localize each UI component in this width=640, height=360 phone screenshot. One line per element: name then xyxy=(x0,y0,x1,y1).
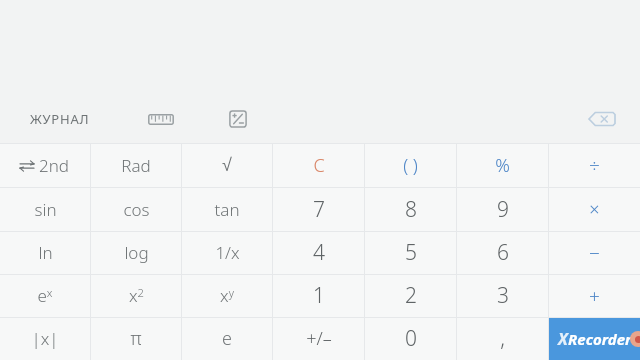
button[interactable]: ln xyxy=(0,231,90,274)
button[interactable]: Unit ruler xyxy=(138,104,184,134)
button[interactable]: 5 xyxy=(365,231,456,274)
staticText: 7 xyxy=(313,195,325,224)
button[interactable]: = xyxy=(549,317,640,360)
staticText: X xyxy=(558,328,568,350)
staticText: 8 xyxy=(405,195,417,224)
button[interactable]: |x| xyxy=(0,317,90,360)
button[interactable]: ÷ xyxy=(549,143,640,187)
button[interactable]: sin xyxy=(0,187,90,231)
button[interactable]: 4 xyxy=(273,231,364,274)
staticText: |x| xyxy=(31,327,59,350)
button[interactable]: ex xyxy=(0,274,90,317)
staticText: 0 xyxy=(405,324,417,353)
staticText: e xyxy=(222,326,232,351)
button[interactable]: log xyxy=(91,231,181,274)
staticText: + xyxy=(589,283,600,309)
button[interactable]: , xyxy=(457,317,548,360)
button[interactable]: 7 xyxy=(273,187,364,231)
staticText: sin xyxy=(34,198,57,221)
staticText: √ xyxy=(222,155,232,175)
button[interactable]: 3 xyxy=(457,274,548,317)
staticText: cos xyxy=(123,198,150,221)
staticText: 2nd xyxy=(39,154,70,177)
button[interactable]: + xyxy=(549,274,640,317)
button[interactable]: − xyxy=(549,231,640,274)
staticText: = xyxy=(589,325,601,352)
button[interactable]: Unit converter xyxy=(218,102,258,136)
staticText: % xyxy=(495,153,510,178)
button[interactable]: 1 xyxy=(273,274,364,317)
button[interactable]: e xyxy=(182,317,272,360)
staticText: Rad xyxy=(121,154,151,177)
button[interactable]: x2 xyxy=(91,274,181,317)
staticText: 9 xyxy=(497,195,509,224)
button[interactable]: × xyxy=(549,187,640,231)
button[interactable]: Rad xyxy=(91,143,181,187)
staticText: +/– xyxy=(306,326,332,351)
staticText: ÷ xyxy=(589,152,600,178)
button[interactable]: +/– xyxy=(273,317,364,360)
button[interactable]: √ xyxy=(182,143,272,187)
button[interactable]: ( ) xyxy=(365,143,456,187)
button[interactable]: 6 xyxy=(457,231,548,274)
button[interactable]: π xyxy=(91,317,181,360)
button[interactable]: 2 xyxy=(365,274,456,317)
button[interactable]: Backspace xyxy=(576,103,628,135)
button[interactable]: 9 xyxy=(457,187,548,231)
staticText: × xyxy=(589,197,600,222)
staticText: − xyxy=(589,240,600,266)
staticText: log xyxy=(124,241,149,264)
button[interactable]: C xyxy=(273,143,364,187)
staticText: 5 xyxy=(405,238,417,267)
staticText: 3 xyxy=(497,281,509,310)
staticText: ЖУРНАЛ xyxy=(30,110,90,128)
staticText: ex xyxy=(37,284,53,307)
staticText: 4 xyxy=(313,238,325,267)
staticText: 1 xyxy=(313,281,325,310)
button[interactable]: % xyxy=(457,143,548,187)
button[interactable]: cos xyxy=(91,187,181,231)
button[interactable]: tan xyxy=(182,187,272,231)
staticText: , xyxy=(500,324,505,353)
staticText: C xyxy=(313,153,325,178)
staticText: 6 xyxy=(497,238,509,267)
staticText: tan xyxy=(214,198,240,221)
button[interactable]: 0 xyxy=(365,317,456,360)
staticText: π xyxy=(130,326,142,351)
staticText: ( ) xyxy=(403,153,418,178)
button[interactable]: 8 xyxy=(365,187,456,231)
staticText: x2 xyxy=(129,284,144,307)
button[interactable]: 1/x xyxy=(182,231,272,274)
button[interactable]: 2nd xyxy=(0,143,90,187)
staticText: 2 xyxy=(405,281,417,310)
staticText: 1/x xyxy=(215,241,240,264)
button[interactable]: ЖУРНАЛ xyxy=(18,103,102,135)
button[interactable]: xy xyxy=(182,274,272,317)
staticText: xy xyxy=(220,284,234,307)
staticText: Recorder xyxy=(568,329,632,349)
staticText: ln xyxy=(38,241,53,264)
